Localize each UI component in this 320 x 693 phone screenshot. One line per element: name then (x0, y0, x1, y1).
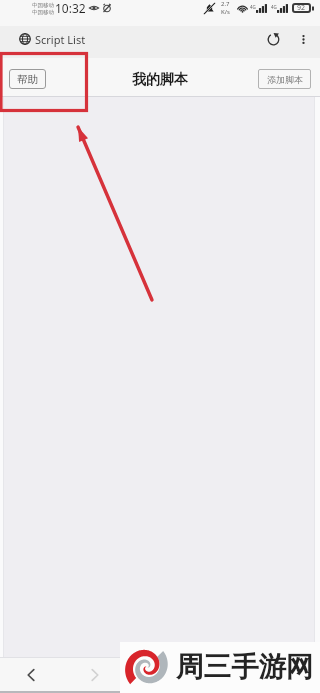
staticText: 4G (250, 4, 256, 10)
button[interactable]: 添加脚本 (258, 69, 311, 89)
button[interactable]: 帮助 (9, 69, 46, 89)
staticText: K/s (221, 8, 230, 16)
button[interactable]: Back (0, 658, 62, 691)
staticText: 中国移动 (32, 2, 54, 9)
staticText: Script List (35, 32, 86, 47)
staticText: 我的脚本 (132, 71, 188, 89)
staticText: 4G (271, 4, 277, 10)
staticText: 2.7 (221, 0, 230, 8)
staticText: 中国移动 (32, 9, 54, 16)
staticText: 添加脚本 (267, 74, 303, 85)
staticText: 10:32 (55, 0, 86, 16)
button[interactable]: More options (290, 26, 316, 52)
staticText: 周三手游网 (176, 650, 314, 685)
staticText: 帮助 (17, 73, 38, 86)
button[interactable]: Refresh (260, 26, 286, 52)
button[interactable]: Forward (62, 658, 128, 691)
staticText: 92 (297, 3, 306, 13)
